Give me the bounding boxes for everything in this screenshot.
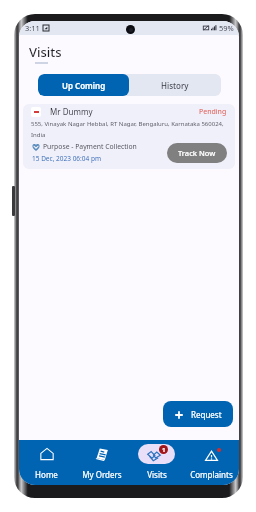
staticText: History [161,80,189,91]
staticText: 3:11 [25,23,40,33]
staticText: Track Now [178,148,216,158]
staticText: 59% [219,23,234,33]
other: Visits [147,449,161,463]
button[interactable]: Collapse [31,107,41,117]
button[interactable]: Complaints [184,440,239,485]
staticText: My Orders [82,469,122,480]
button[interactable]: Track Now [167,143,227,163]
button[interactable]: History [129,74,221,96]
staticText: 555, Vinayak Nagar Hebbal, RT Nagar, Ben… [31,120,225,139]
button[interactable]: Collapse [23,104,235,169]
button[interactable]: Visits [129,440,184,485]
staticText: Home [35,469,58,480]
other: My Orders [95,447,109,461]
button[interactable]: My Orders [74,440,129,485]
staticText: Up Coming [62,80,106,91]
button[interactable]: Home [19,440,74,485]
staticText: Visits [147,469,167,480]
staticText: Complaints [190,469,233,480]
staticText: Purpose - Payment Collection [43,142,137,151]
other: Complaints [205,449,218,462]
staticText: Pending [199,107,227,117]
button[interactable]: Request [163,401,233,427]
staticText: Mr Dummy [50,106,93,117]
other: Home [40,447,54,461]
staticText: Visits [29,43,62,61]
staticText: 15 Dec, 2023 06:04 pm [32,154,102,163]
button[interactable]: Up Coming [38,74,129,96]
staticText: 1 [162,446,166,454]
staticText: Request [191,409,222,420]
